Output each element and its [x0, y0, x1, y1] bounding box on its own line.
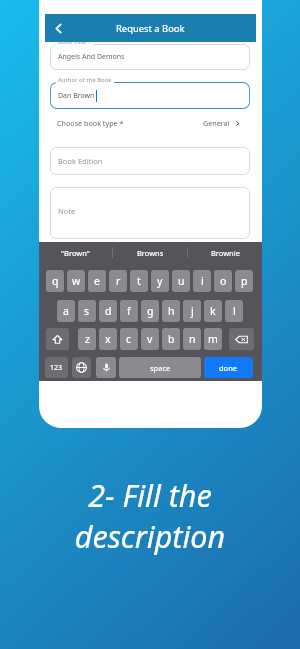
staticText: v	[147, 332, 153, 346]
staticText: Author of the Book	[58, 76, 112, 84]
staticText: done	[219, 363, 238, 373]
staticText: 123	[50, 363, 63, 373]
staticText: m	[208, 332, 218, 346]
button[interactable]: p	[235, 270, 253, 292]
button[interactable]: y	[151, 270, 169, 292]
button[interactable]: Browns	[113, 242, 187, 263]
staticText: Dan Brown	[58, 91, 95, 101]
button[interactable]: w	[67, 270, 85, 292]
staticText: General	[203, 118, 230, 128]
staticText: t	[137, 274, 141, 288]
button[interactable]: Brownie	[188, 242, 262, 263]
button[interactable]: e	[88, 270, 106, 292]
button[interactable]: Voice input	[96, 357, 116, 378]
button[interactable]: Choose book type *	[50, 113, 250, 133]
staticText: c	[126, 332, 132, 346]
button[interactable]: Request a Book	[45, 14, 256, 42]
staticText: j	[191, 304, 194, 318]
button[interactable]: Note	[50, 187, 250, 239]
button[interactable]: 123	[45, 357, 68, 378]
staticText: k	[210, 304, 216, 318]
button[interactable]: c	[120, 328, 138, 350]
button[interactable]: Change keyboard language	[72, 357, 91, 378]
staticText: "Brown"	[61, 248, 90, 258]
staticText: o	[220, 274, 227, 288]
button[interactable]: h	[162, 300, 180, 322]
staticText: g	[147, 304, 154, 318]
button[interactable]: x	[99, 328, 117, 350]
staticText: b	[168, 332, 175, 346]
button[interactable]: f	[120, 300, 138, 322]
button[interactable]: u	[172, 270, 190, 292]
staticText: description	[0, 515, 300, 557]
button[interactable]: Backspace	[229, 328, 254, 350]
button[interactable]: g	[141, 300, 159, 322]
button[interactable]: Back	[45, 14, 71, 42]
button[interactable]: n	[183, 328, 201, 350]
staticText: Request a Book	[116, 22, 185, 35]
button[interactable]: v	[141, 328, 159, 350]
staticText: f	[127, 304, 131, 318]
button[interactable]: done	[204, 357, 253, 378]
button[interactable]: Shift	[46, 328, 69, 350]
button[interactable]: Dan Brown	[50, 82, 250, 109]
staticText: y	[157, 274, 163, 288]
button[interactable]: o	[214, 270, 232, 292]
staticText: s	[84, 304, 90, 318]
staticText: a	[63, 304, 69, 318]
button[interactable]: Book Edition	[50, 147, 250, 175]
button[interactable]: a	[57, 300, 75, 322]
staticText: n	[189, 332, 196, 346]
button[interactable]: l	[225, 300, 243, 322]
button[interactable]: m	[204, 328, 222, 350]
staticText: Angels And Demons	[58, 52, 125, 62]
staticText: e	[94, 274, 100, 288]
staticText: d	[105, 304, 112, 318]
staticText: q	[52, 274, 59, 288]
button[interactable]: "Brown"	[39, 242, 112, 263]
button[interactable]: space	[119, 357, 201, 378]
button[interactable]: i	[193, 270, 211, 292]
staticText: i	[201, 274, 204, 288]
button[interactable]: d	[99, 300, 117, 322]
staticText: Note	[58, 206, 76, 216]
staticText: x	[105, 332, 111, 346]
staticText: u	[178, 274, 185, 288]
button[interactable]: k	[204, 300, 222, 322]
staticText: Choose book type *	[57, 118, 124, 128]
button[interactable]: j	[183, 300, 201, 322]
staticText: h	[168, 304, 175, 318]
button[interactable]: r	[109, 270, 127, 292]
button[interactable]: z	[78, 328, 96, 350]
staticText: r	[116, 274, 121, 288]
button[interactable]: s	[78, 300, 96, 322]
button[interactable]: q	[46, 270, 64, 292]
staticText: Browns	[137, 248, 164, 258]
button[interactable]: b	[162, 328, 180, 350]
staticText: Brownie	[211, 248, 240, 258]
staticText: z	[85, 332, 90, 346]
staticText: Book Edition	[58, 156, 103, 166]
button[interactable]: t	[130, 270, 148, 292]
staticText: w	[72, 274, 81, 288]
button[interactable]: Angels And Demons	[50, 44, 250, 70]
staticText: p	[241, 274, 248, 288]
staticText: 2- Fill the	[0, 474, 300, 516]
staticText: Book Title *	[58, 38, 91, 46]
staticText: space	[150, 363, 171, 373]
staticText: l	[233, 304, 236, 318]
